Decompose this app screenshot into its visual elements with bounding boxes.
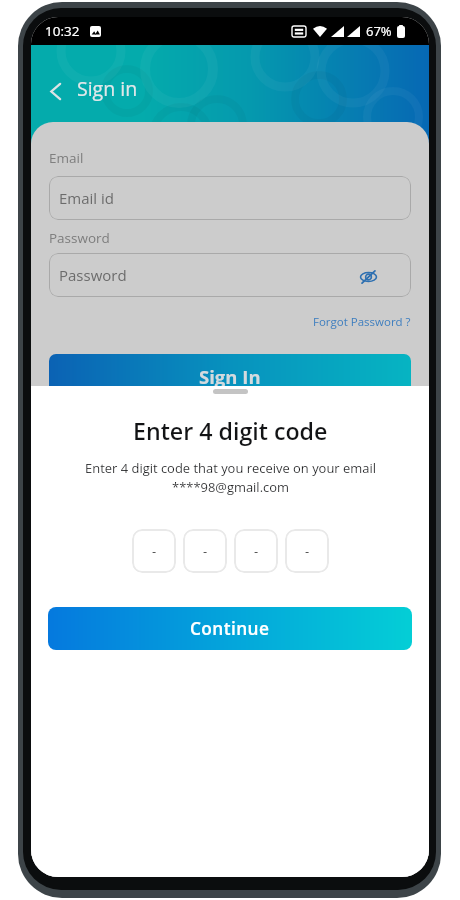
button[interactable]: Email id <box>49 176 411 220</box>
staticText: Enter 4 digit code <box>133 415 328 447</box>
button[interactable]: - <box>183 529 227 573</box>
button[interactable]: Forgot Password ? <box>313 314 411 330</box>
staticText: 67% <box>366 22 392 40</box>
staticText: Email id <box>59 188 114 208</box>
button[interactable]: - <box>234 529 278 573</box>
staticText: Sign In <box>199 364 261 389</box>
staticText: Continue <box>190 617 270 641</box>
staticText: Password <box>49 229 110 247</box>
staticText: - <box>305 542 310 560</box>
button[interactable]: Back <box>42 78 68 104</box>
staticText: Password <box>59 265 127 285</box>
staticText: 10:32 <box>45 22 80 40</box>
button[interactable]: Sign In <box>49 354 411 398</box>
staticText: Email <box>49 149 84 167</box>
button[interactable]: Show password <box>356 265 380 289</box>
staticText: - <box>152 542 157 560</box>
button[interactable]: - <box>285 529 329 573</box>
staticText: - <box>254 542 259 560</box>
button[interactable]: Password <box>49 253 411 297</box>
button[interactable]: Continue <box>48 607 412 650</box>
staticText: Enter 4 digit code that you receive on y… <box>85 459 376 495</box>
staticText: Sign in <box>77 75 138 102</box>
button[interactable]: - <box>132 529 176 573</box>
staticText: - <box>203 542 208 560</box>
